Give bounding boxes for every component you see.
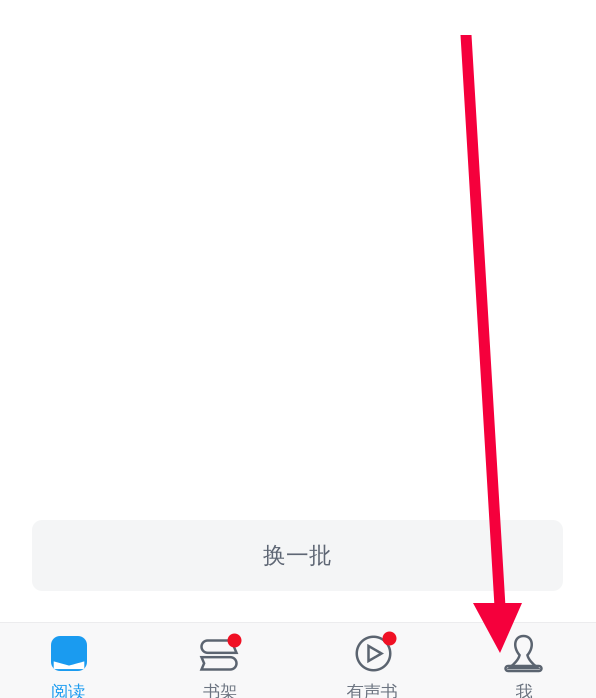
button[interactable]: 有声书 xyxy=(296,622,448,698)
button[interactable]: 阅读 xyxy=(0,622,144,698)
staticText: 有声书 xyxy=(346,681,397,698)
button[interactable]: 我 xyxy=(448,622,596,698)
button[interactable]: 书架 xyxy=(144,622,296,698)
staticText: 阅读 xyxy=(51,681,85,698)
staticText: 我 xyxy=(515,681,532,698)
staticText: 换一批 xyxy=(263,542,332,569)
button[interactable]: 换一批 xyxy=(32,520,563,591)
staticText: 书架 xyxy=(203,681,237,698)
